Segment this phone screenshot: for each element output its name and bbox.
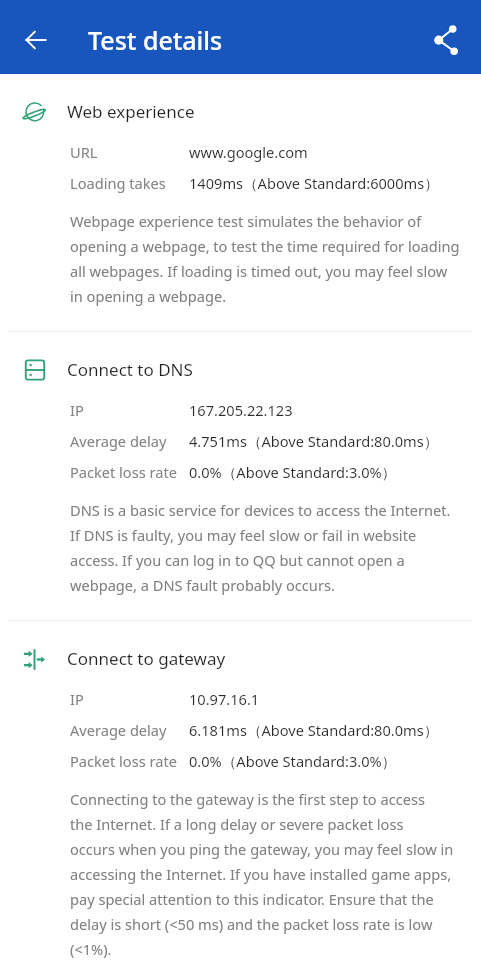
staticText: Test details <box>88 23 223 57</box>
button[interactable]: Back <box>13 17 59 63</box>
staticText: 6.181ms（Above Standard:80.0ms） <box>189 720 439 740</box>
staticText: Web experience <box>67 102 195 122</box>
staticText: IP <box>70 400 84 420</box>
staticText: 167.205.22.123 <box>189 400 293 420</box>
staticText: IP <box>70 689 84 709</box>
staticText: Connecting to the gateway is the first s… <box>70 786 460 961</box>
staticText: Average delay <box>70 720 167 740</box>
staticText: Packet loss rate <box>70 751 177 771</box>
button[interactable]: Share <box>422 17 468 63</box>
staticText: 10.97.16.1 <box>189 689 260 709</box>
staticText: URL <box>70 142 98 162</box>
staticText: www.google.com <box>189 142 308 162</box>
staticText: 1409ms（Above Standard:6000ms） <box>189 173 439 193</box>
staticText: Packet loss rate <box>70 462 177 482</box>
staticText: Webpage experience test simulates the be… <box>70 208 460 308</box>
staticText: 0.0%（Above Standard:3.0%） <box>189 751 397 771</box>
staticText: Loading takes <box>70 173 166 193</box>
staticText: Connect to gateway <box>67 649 226 669</box>
staticText: DNS is a basic service for devices to ac… <box>70 497 460 597</box>
staticText: 0.0%（Above Standard:3.0%） <box>189 462 397 482</box>
staticText: Connect to DNS <box>67 360 193 380</box>
staticText: 4.751ms（Above Standard:80.0ms） <box>189 431 439 451</box>
staticText: Average delay <box>70 431 167 451</box>
